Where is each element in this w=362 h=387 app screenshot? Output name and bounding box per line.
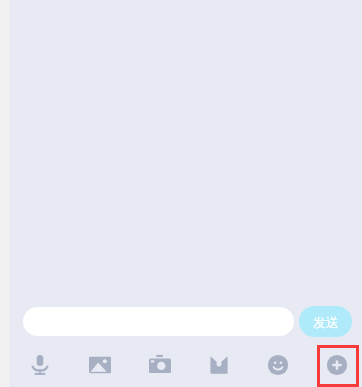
- button[interactable]: Emoji: [264, 351, 292, 379]
- button[interactable]: Red packet: [205, 351, 233, 379]
- button[interactable]: Take photo: [146, 351, 174, 379]
- button[interactable]: [23, 307, 294, 336]
- staticText: 发送: [313, 314, 339, 330]
- button[interactable]: More options: [323, 351, 351, 379]
- button[interactable]: Voice message: [26, 351, 54, 379]
- button[interactable]: 发送: [299, 306, 352, 337]
- button[interactable]: Send photo: [86, 351, 114, 379]
